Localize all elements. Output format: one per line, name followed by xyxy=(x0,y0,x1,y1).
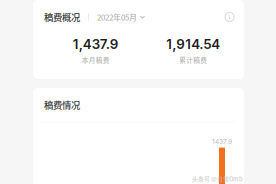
staticText: 累计稿费 xyxy=(179,55,207,65)
staticText: 1,914.54 xyxy=(166,36,220,52)
staticText: 稿费情况 xyxy=(44,98,80,111)
staticText: 1,437.9 xyxy=(73,36,119,52)
button[interactable]: 说明 xyxy=(225,12,234,21)
staticText: 1437.9 xyxy=(212,137,232,146)
staticText: 稿费概况 xyxy=(44,10,80,24)
button[interactable]: 2022年05月 xyxy=(97,11,145,23)
staticText: 2022年05月 xyxy=(97,11,137,23)
staticText: 头条号 @日常Omb xyxy=(192,174,243,183)
staticText: 本月稿费 xyxy=(82,55,110,65)
